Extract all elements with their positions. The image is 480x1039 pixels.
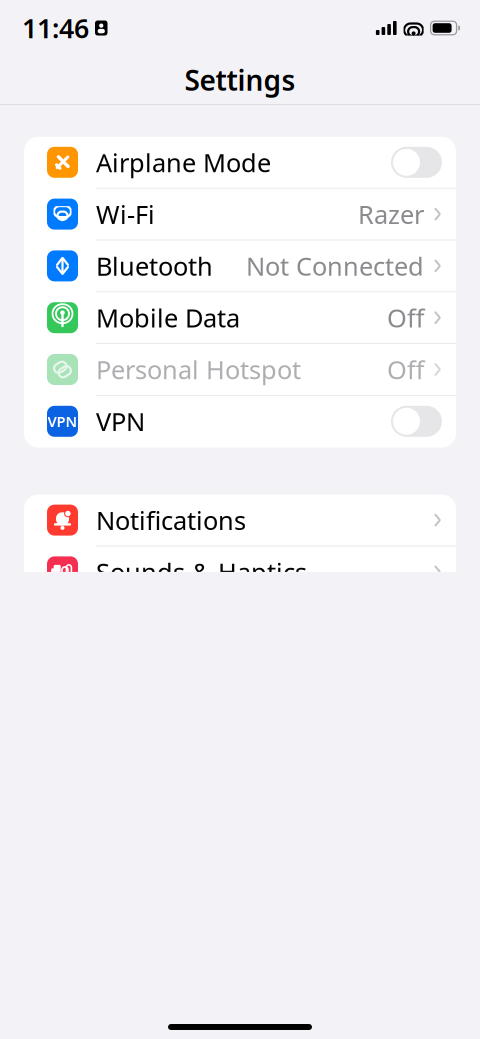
button[interactable]: Wi-Fi (24, 189, 456, 240)
button[interactable]: Sounds & Haptics (24, 546, 456, 598)
staticText: 11:46 (22, 10, 89, 46)
staticText: Personal Hotspot (96, 353, 301, 386)
staticText: Settings (184, 61, 295, 99)
staticText: Off (387, 301, 424, 334)
button[interactable]: VPN (24, 396, 456, 448)
staticText: Airplane Mode (96, 145, 271, 179)
staticText: Off (387, 353, 424, 386)
button[interactable]: Wallpaper (24, 1003, 456, 1039)
staticText: VPN (47, 412, 77, 431)
staticText: Wallpaper (96, 1011, 217, 1039)
button[interactable]: Mobile Data (24, 292, 456, 344)
button[interactable]: Personal Hotspot (24, 344, 456, 396)
staticText: VPN (96, 404, 145, 438)
staticText: Not Connected (246, 249, 424, 283)
staticText: Mobile Data (96, 301, 240, 334)
staticText: Wi-Fi (96, 197, 155, 231)
staticText: Sounds & Haptics (96, 555, 307, 589)
button[interactable]: Bluetooth (24, 240, 456, 292)
staticText: Bluetooth (96, 249, 213, 283)
button[interactable]: Airplane Mode (24, 137, 456, 189)
staticText: Notifications (96, 503, 246, 537)
staticText: Razer (358, 197, 424, 231)
button[interactable]: Notifications (24, 495, 456, 546)
